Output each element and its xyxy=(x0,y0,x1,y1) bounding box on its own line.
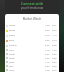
staticText: 1.76 xyxy=(45,49,50,52)
staticText: 0.35 xyxy=(52,53,57,56)
button[interactable]: Delta xyxy=(5,33,59,38)
button[interactable]: Hotel xyxy=(5,52,59,56)
staticText: 1.42 xyxy=(52,49,57,52)
staticText: 0.74 xyxy=(52,39,57,42)
staticText: 0.83 xyxy=(52,65,57,68)
staticText: 3.02 xyxy=(45,44,50,47)
staticText: Connect with xyxy=(0,1,64,6)
staticText: Echo xyxy=(9,39,15,42)
staticText: 0.57 xyxy=(52,61,57,64)
staticText: your friends now xyxy=(0,6,64,10)
staticText: 0.94 xyxy=(45,29,50,32)
staticText: 0.87 xyxy=(45,65,50,68)
staticText: Kilo xyxy=(9,65,13,68)
staticText: Golf xyxy=(9,49,14,52)
staticText: 0.22 xyxy=(52,29,57,32)
button[interactable]: Foxtrot xyxy=(5,43,59,48)
staticText: Foxtrot xyxy=(9,44,17,47)
staticText: Juliet xyxy=(9,61,15,64)
staticText: Bravo xyxy=(9,29,16,32)
staticText: 2.10 xyxy=(45,34,50,37)
staticText: India xyxy=(9,57,15,60)
staticText: Alpha xyxy=(9,24,16,27)
button[interactable]: Golf xyxy=(5,48,59,52)
staticText: 1.13 xyxy=(52,34,57,37)
button[interactable]: Lima xyxy=(5,68,59,72)
button[interactable]: Juliet xyxy=(5,60,59,64)
staticText: 0.96 xyxy=(52,44,57,47)
button[interactable]: Bravo xyxy=(5,28,59,33)
staticText: 2.65 xyxy=(45,57,50,60)
staticText: 0.68 xyxy=(52,57,57,60)
staticText: 0.55 xyxy=(45,39,50,42)
button[interactable]: Alpha xyxy=(5,23,59,28)
staticText: Lima xyxy=(9,69,15,72)
staticText: 1.28 xyxy=(45,24,50,27)
staticText: 1.95 xyxy=(45,69,50,72)
button[interactable]: Kilo xyxy=(5,64,59,68)
button[interactable]: India xyxy=(5,56,59,60)
staticText: Market Watch xyxy=(5,17,59,21)
staticText: Hotel xyxy=(9,53,15,56)
button[interactable]: Echo xyxy=(5,38,59,43)
staticText: 0.19 xyxy=(52,69,57,72)
staticText: 0.41 xyxy=(52,24,57,27)
staticText: 1.12 xyxy=(45,61,50,64)
staticText: Delta xyxy=(9,34,15,37)
staticText: 0.41 xyxy=(45,53,50,56)
